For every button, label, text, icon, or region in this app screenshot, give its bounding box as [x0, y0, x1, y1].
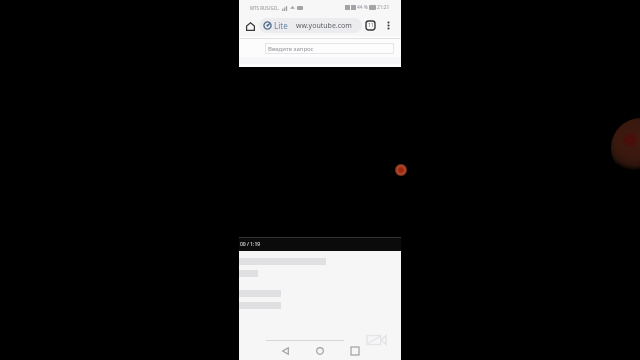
button[interactable]: Введите запрос — [265, 43, 394, 54]
staticText: 00 / 1:19 — [240, 241, 261, 248]
staticText: 21:21 — [377, 4, 390, 11]
button[interactable]: Recent apps — [347, 343, 363, 359]
button[interactable]: Tabs — [363, 18, 378, 33]
button[interactable]: Lite — [259, 18, 362, 33]
staticText: 11 — [368, 22, 374, 29]
button[interactable]: More options — [381, 18, 395, 32]
staticText: MTS RUS/GO.. — [250, 5, 280, 11]
staticText: Lite — [274, 20, 288, 31]
button[interactable]: Home — [312, 343, 328, 359]
staticText: 44 % — [357, 4, 368, 11]
staticText: ww.youtube.com — [296, 21, 352, 31]
button[interactable]: Back — [277, 343, 293, 359]
staticText: Введите запрос — [268, 45, 314, 53]
button[interactable]: Home — [241, 17, 259, 35]
